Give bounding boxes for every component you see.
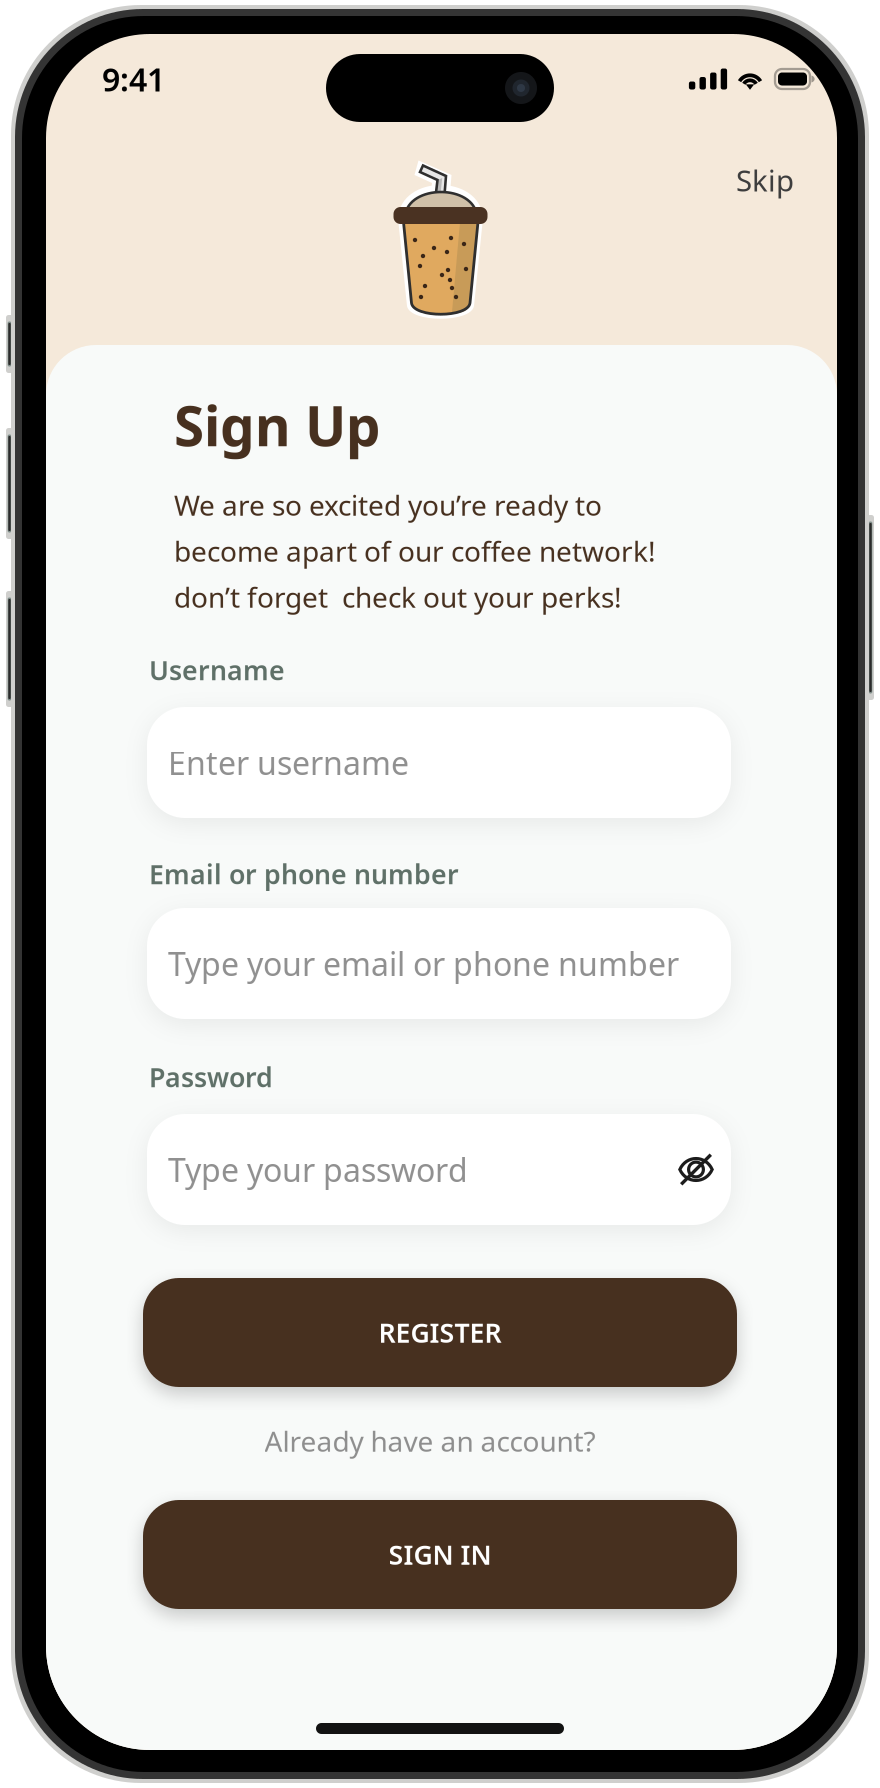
button[interactable]: Type your email or phone number bbox=[147, 908, 731, 1019]
staticText: 9:41 bbox=[102, 58, 165, 100]
button[interactable]: SIGN IN bbox=[143, 1500, 737, 1609]
staticText: Skip bbox=[736, 160, 794, 199]
staticText: become apart of our coffee network! bbox=[174, 532, 656, 570]
staticText: Email or phone number bbox=[149, 856, 459, 892]
staticText: SIGN IN bbox=[388, 1537, 491, 1572]
staticText: Sign Up bbox=[174, 389, 381, 461]
staticText: don’t forget check out your perks! bbox=[174, 578, 622, 616]
staticText: Password bbox=[149, 1059, 273, 1095]
staticText: Type your email or phone number bbox=[168, 942, 679, 985]
button[interactable]: Type your password bbox=[147, 1114, 731, 1225]
button[interactable]: Enter username bbox=[147, 707, 731, 818]
button[interactable]: REGISTER bbox=[143, 1278, 737, 1387]
button[interactable]: Skip bbox=[720, 146, 810, 213]
staticText: Username bbox=[149, 652, 285, 688]
staticText: Already have an account? bbox=[264, 1422, 595, 1460]
staticText: REGISTER bbox=[378, 1315, 501, 1350]
staticText: Type your password bbox=[168, 1148, 468, 1191]
staticText: Enter username bbox=[168, 741, 409, 784]
staticText: We are so excited you’re ready to bbox=[174, 486, 602, 524]
